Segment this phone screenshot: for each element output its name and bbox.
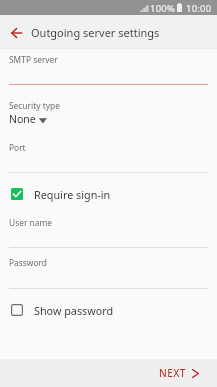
button[interactable]: Show password: [0, 299, 217, 321]
staticText: Require sign-in: [34, 187, 111, 202]
staticText: Outgoing server settings: [31, 25, 160, 40]
staticText: Show password: [34, 303, 114, 318]
staticText: None: [9, 112, 36, 126]
button[interactable]: Navigate up: [4, 21, 28, 45]
staticText: NEXT: [159, 366, 186, 380]
staticText: 100%: [150, 2, 175, 15]
button[interactable]: NEXT: [145, 359, 217, 387]
staticText: Port: [9, 142, 26, 153]
staticText: Security type: [9, 100, 60, 111]
button[interactable]: Select security type: [38, 115, 56, 126]
button[interactable]: Require sign-in: [0, 183, 217, 205]
staticText: 10:00: [186, 2, 212, 15]
staticText: SMTP server: [9, 54, 58, 65]
staticText: Password: [9, 257, 47, 268]
staticText: User name: [9, 217, 53, 228]
